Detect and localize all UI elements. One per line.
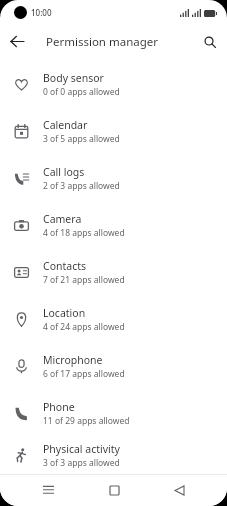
button[interactable]: Calendar (0, 108, 227, 155)
staticText: Location (43, 306, 86, 320)
staticText: 6 of 17 apps allowed (43, 368, 125, 380)
button[interactable]: Search (198, 30, 221, 53)
staticText: Phone (43, 400, 75, 414)
staticText: 11 of 29 apps allowed (43, 415, 130, 427)
staticText: Microphone (43, 353, 103, 367)
button[interactable]: Physical activity (0, 437, 227, 474)
button[interactable]: Back (6, 30, 29, 53)
staticText: 3 of 5 apps allowed (43, 133, 120, 145)
button[interactable]: Location (0, 296, 227, 343)
staticText: Body sensor (43, 71, 104, 85)
button[interactable]: Home (97, 475, 131, 506)
button[interactable]: Recents (31, 475, 65, 506)
staticText: 4 of 24 apps allowed (43, 321, 125, 333)
button[interactable]: Camera (0, 202, 227, 249)
staticText: Camera (43, 212, 82, 226)
staticText: 2 of 3 apps allowed (43, 180, 120, 192)
button[interactable]: Body sensor (0, 61, 227, 108)
button[interactable]: Call logs (0, 155, 227, 202)
button[interactable]: Back (162, 475, 196, 506)
staticText: 4 of 18 apps allowed (43, 227, 125, 239)
button[interactable]: Contacts (0, 249, 227, 296)
staticText: 3 of 3 apps allowed (43, 457, 120, 469)
staticText: Contacts (43, 259, 87, 273)
staticText: 0 of 0 apps allowed (43, 86, 120, 98)
staticText: Physical activity (43, 442, 120, 456)
staticText: 10:00 (31, 7, 52, 18)
staticText: Permission manager (46, 34, 159, 50)
staticText: Calendar (43, 118, 88, 132)
button[interactable]: Phone (0, 390, 227, 437)
button[interactable]: Microphone (0, 343, 227, 390)
staticText: Call logs (43, 165, 85, 179)
staticText: 7 of 21 apps allowed (43, 274, 125, 286)
